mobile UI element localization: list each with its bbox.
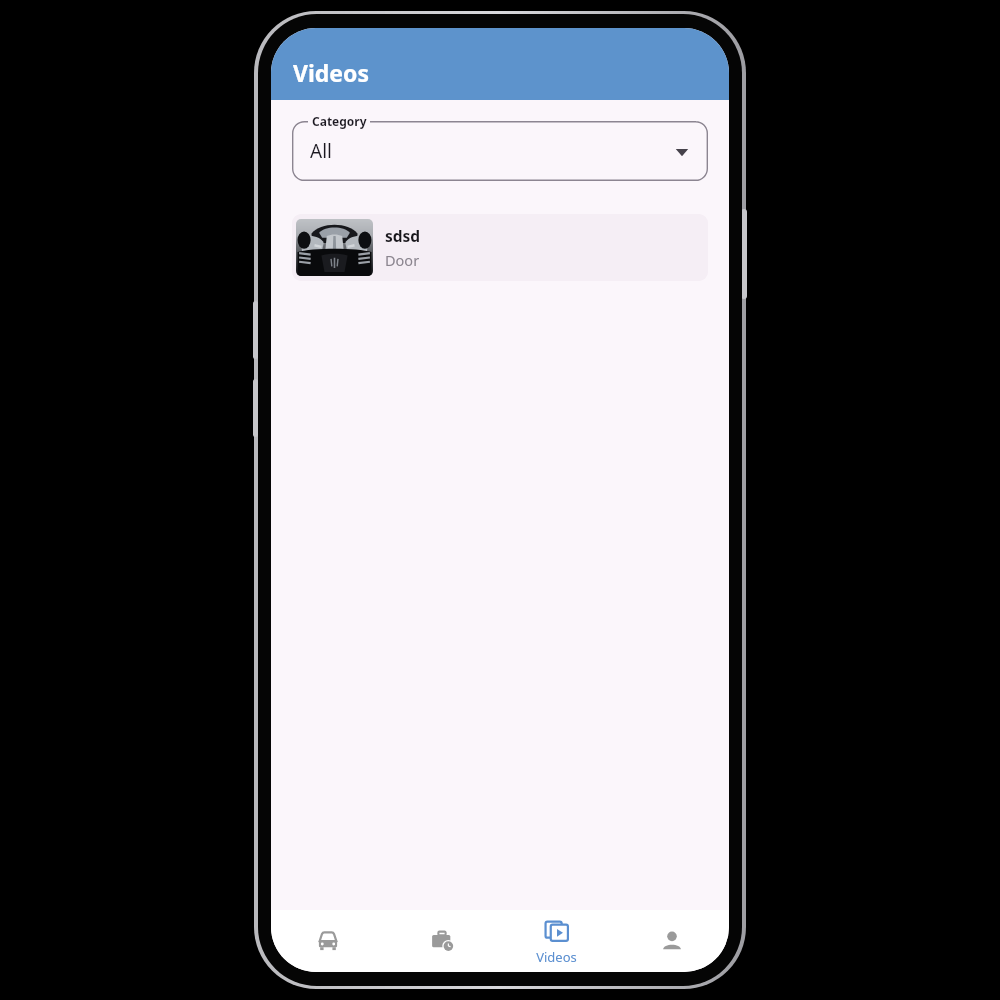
button[interactable]: Bookings: [385, 910, 499, 972]
button[interactable]: sdsd: [292, 214, 708, 281]
staticText: All: [310, 138, 332, 164]
staticText: Videos: [293, 57, 370, 88]
staticText: Videos: [536, 948, 577, 966]
staticText: sdsd: [385, 225, 421, 246]
button[interactable]: Profile: [614, 910, 729, 972]
button[interactable]: Cars: [271, 910, 385, 972]
staticText: Category: [312, 113, 367, 129]
button[interactable]: Category: [292, 121, 708, 181]
button[interactable]: Videos: [499, 910, 614, 972]
staticText: Door: [385, 250, 420, 270]
